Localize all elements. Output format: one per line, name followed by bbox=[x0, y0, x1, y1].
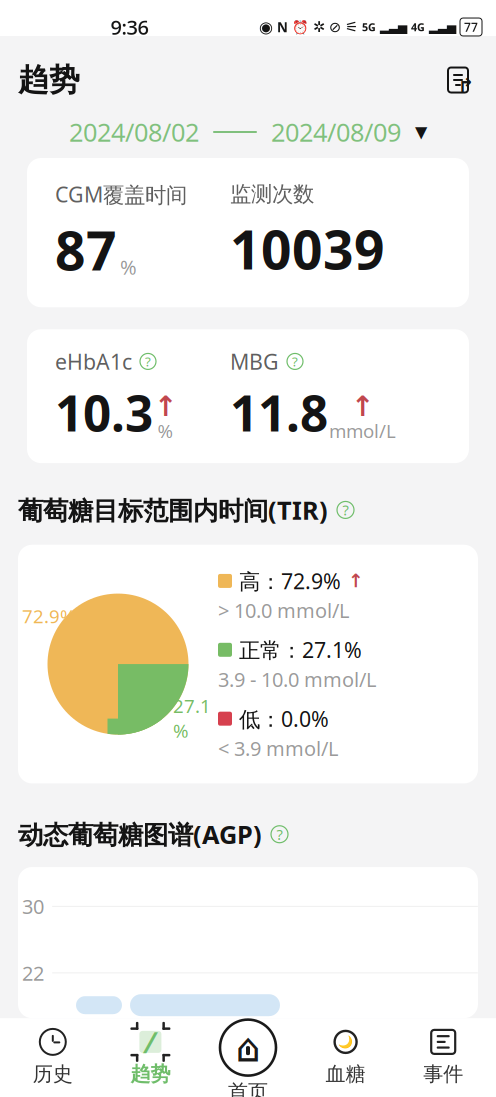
staticText: mmol/L bbox=[329, 418, 396, 443]
staticText: 11.8 bbox=[230, 380, 328, 445]
button[interactable]: 事件 bbox=[394, 1022, 492, 1092]
staticText: CGM覆盖时间 bbox=[55, 180, 187, 208]
staticText: 10039 bbox=[230, 213, 385, 284]
staticText: 动态葡萄糖图谱(AGP) bbox=[18, 817, 262, 851]
staticText: MBG bbox=[230, 347, 279, 376]
button[interactable]: ⌂ bbox=[199, 1010, 297, 1097]
staticText: 22 bbox=[22, 960, 44, 986]
staticText: 87 bbox=[55, 214, 117, 285]
button[interactable]: ⁄ bbox=[102, 1022, 199, 1092]
button[interactable]: 历史 bbox=[4, 1022, 102, 1092]
staticText: 趋势 bbox=[130, 1062, 170, 1086]
staticText: % bbox=[120, 254, 137, 280]
button[interactable]: 🌙 bbox=[297, 1022, 394, 1092]
staticText: 5G bbox=[362, 20, 376, 34]
staticText: > 10.0 mmol/L bbox=[218, 597, 349, 624]
staticText: ↑ bbox=[348, 570, 364, 591]
staticText: ? bbox=[342, 500, 348, 520]
staticText: 监测次数 bbox=[230, 181, 314, 207]
staticText: 72.9% bbox=[22, 604, 76, 628]
button[interactable]: 报告 bbox=[438, 60, 478, 100]
staticText: 2024/08/02 bbox=[69, 115, 199, 149]
staticText: ? bbox=[276, 824, 282, 844]
staticText: 首页 bbox=[228, 1080, 268, 1097]
staticText: 历史 bbox=[33, 1062, 73, 1086]
staticText: % bbox=[157, 418, 173, 443]
staticText: N bbox=[277, 18, 288, 36]
staticText: 正常：27.1% bbox=[239, 636, 362, 664]
staticText: ? bbox=[145, 353, 151, 370]
staticText: 10.3 bbox=[55, 380, 153, 445]
staticText: 3.9 - 10.0 mmol/L bbox=[218, 666, 376, 693]
staticText: ✲ bbox=[313, 19, 325, 35]
staticText: 77 bbox=[464, 19, 478, 35]
button[interactable]: 2024/08/02 bbox=[0, 106, 496, 158]
staticText: < 3.9 mmol/L bbox=[218, 735, 338, 761]
staticText: 27.1% bbox=[173, 693, 211, 743]
staticText: 葡萄糖目标范围内时间(TIR) bbox=[18, 493, 328, 527]
staticText: 4G bbox=[411, 20, 425, 34]
staticText: ◉ bbox=[259, 18, 273, 36]
staticText: ↑ bbox=[154, 390, 177, 422]
staticText: ⊘ bbox=[329, 19, 341, 35]
staticText: ⌂ bbox=[235, 1025, 260, 1070]
staticText: ▂▃▅ bbox=[380, 20, 407, 34]
staticText: ⏰ bbox=[292, 19, 309, 35]
staticText: 血糖 bbox=[326, 1062, 366, 1086]
staticText: ↑ bbox=[351, 390, 374, 422]
staticText: 2024/08/09 bbox=[271, 115, 401, 149]
staticText: 趋势 bbox=[18, 61, 80, 99]
staticText: 高：72.9% bbox=[239, 567, 341, 595]
staticText: 低：0.0% bbox=[239, 704, 329, 733]
staticText: ⚟ bbox=[345, 19, 358, 35]
staticText: 🌙 bbox=[338, 1035, 353, 1049]
staticText: ▂▃▅ bbox=[429, 20, 456, 34]
staticText: ? bbox=[292, 353, 298, 370]
staticText: 30 bbox=[22, 893, 44, 920]
staticText: eHbA1c bbox=[55, 347, 132, 376]
staticText: ↱ bbox=[457, 75, 474, 97]
staticText: ▼ bbox=[415, 123, 427, 141]
staticText: ⁄ bbox=[148, 1022, 152, 1061]
staticText: 事件 bbox=[423, 1062, 463, 1086]
staticText: 9:36 bbox=[110, 14, 148, 40]
